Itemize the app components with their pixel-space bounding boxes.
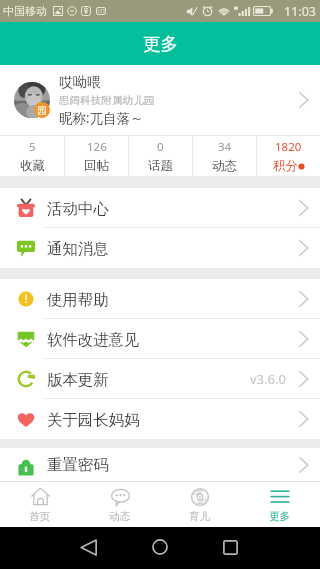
staticText: 1820 — [275, 139, 302, 155]
staticText: 昵称:兀自落～ — [59, 109, 144, 127]
button[interactable]: 园 — [0, 65, 320, 135]
button[interactable]: Recents — [223, 540, 238, 555]
staticText: 更多 — [269, 510, 291, 523]
staticText: 思阔科技附属幼儿园 — [59, 94, 155, 107]
staticText: 积分 — [273, 158, 298, 174]
button[interactable]: 34 — [193, 136, 256, 176]
button[interactable]: 重置密码 — [0, 448, 320, 481]
staticText: 重置密码 — [47, 455, 109, 474]
staticText: 动态 — [212, 158, 237, 174]
button[interactable]: 0 — [129, 136, 192, 176]
staticText: 版本更新 — [47, 370, 109, 389]
staticText: 中国移动 — [3, 4, 47, 18]
staticText: 关于园长妈妈 — [47, 410, 140, 429]
staticText: 11:03 — [284, 3, 316, 20]
staticText: 哎呦喂 — [59, 74, 101, 92]
staticText: 软件改进意见 — [47, 330, 140, 349]
staticText: 5 — [29, 139, 36, 155]
button[interactable]: 通知消息 — [0, 228, 320, 268]
button[interactable]: 126 — [65, 136, 128, 176]
button[interactable]: 更多 — [240, 482, 320, 527]
button[interactable]: Home — [152, 539, 168, 555]
staticText: 园 — [37, 104, 47, 117]
staticText: 话题 — [148, 158, 173, 174]
button[interactable]: 使用帮助 — [0, 279, 320, 319]
staticText: 更多 — [143, 33, 178, 55]
button[interactable]: 动态 — [80, 482, 160, 527]
button[interactable]: 育儿 — [160, 482, 240, 527]
staticText: 动态 — [109, 510, 131, 523]
button[interactable]: 5 — [0, 136, 64, 176]
button[interactable]: 活动中心 — [0, 188, 320, 228]
staticText: 34 — [218, 139, 232, 155]
staticText: 126 — [87, 139, 107, 155]
button[interactable]: 软件改进意见 — [0, 319, 320, 359]
button[interactable]: 首页 — [0, 482, 80, 527]
button[interactable]: 关于园长妈妈 — [0, 399, 320, 439]
staticText: 使用帮助 — [47, 290, 109, 309]
staticText: 首页 — [29, 510, 51, 523]
button[interactable]: 1820 — [257, 136, 320, 176]
staticText: 育儿 — [189, 510, 211, 523]
staticText: 0 — [157, 139, 164, 155]
button[interactable]: Back — [80, 539, 97, 556]
staticText: 活动中心 — [47, 199, 109, 218]
staticText: 通知消息 — [47, 239, 109, 258]
staticText: 收藏 — [20, 158, 45, 174]
staticText: v3.6.0 — [250, 370, 286, 388]
button[interactable]: 版本更新 — [0, 359, 320, 399]
staticText: 回帖 — [84, 158, 109, 174]
